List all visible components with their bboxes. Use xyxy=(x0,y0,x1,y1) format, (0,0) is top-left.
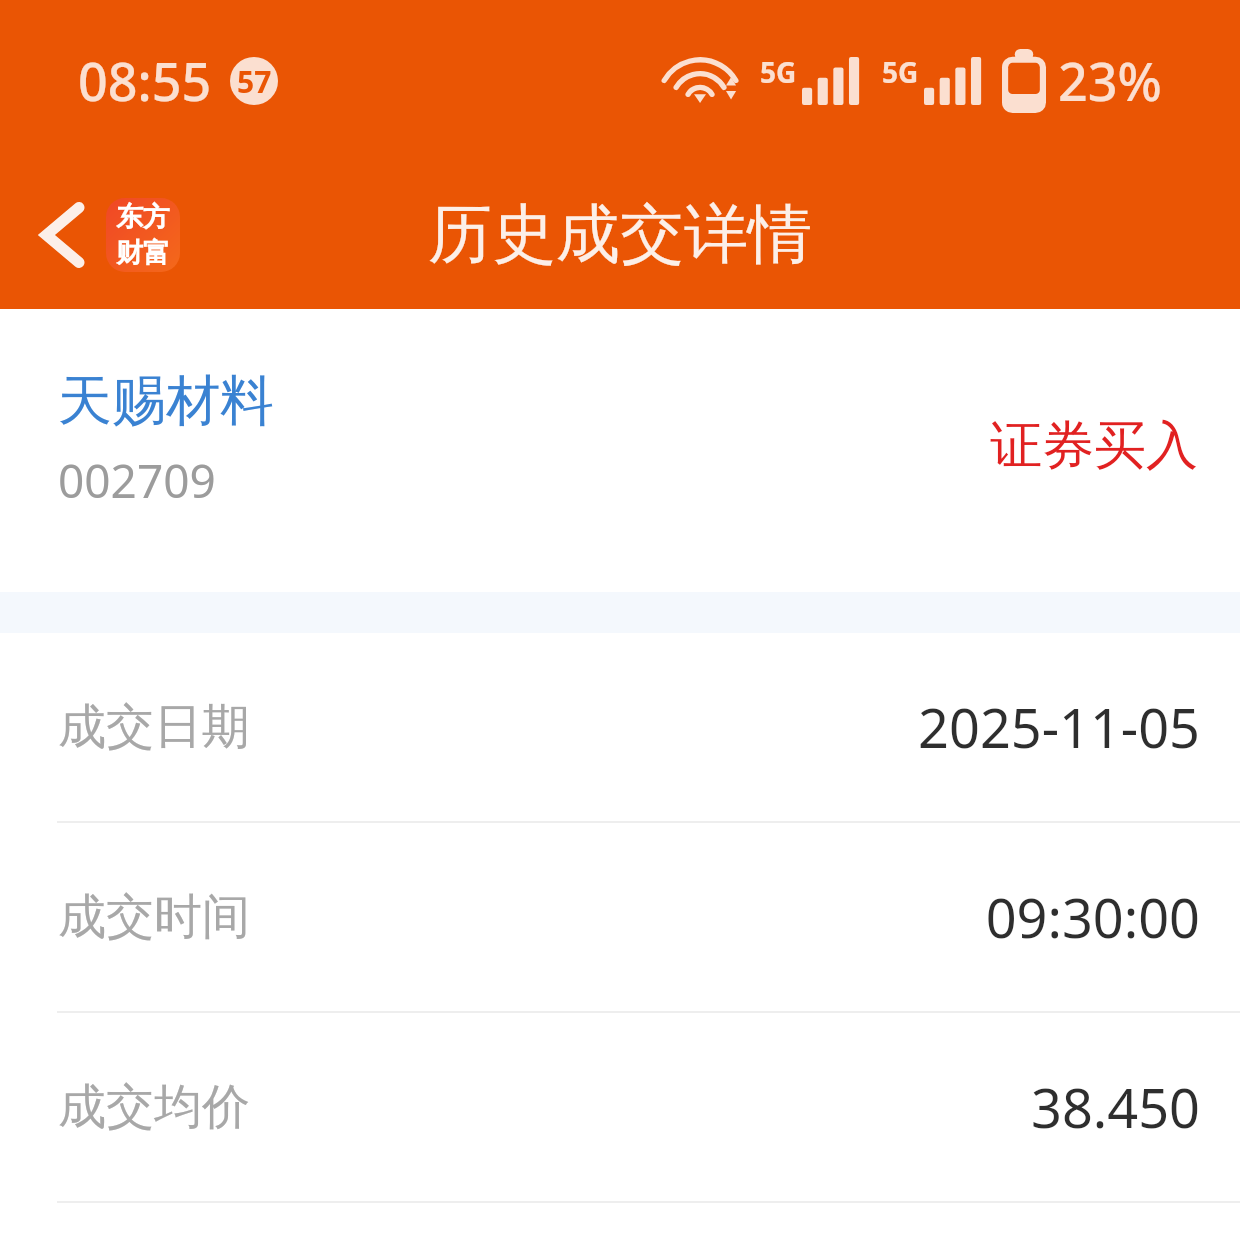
staticText: 002709 xyxy=(58,449,216,512)
button[interactable]: 成交日期 xyxy=(0,633,1240,821)
button[interactable]: 成交均价 xyxy=(0,1013,1240,1201)
staticText: 成交日期 xyxy=(58,697,250,757)
staticText: 历史成交详情 xyxy=(428,194,812,275)
staticText: 23% xyxy=(1058,45,1162,116)
staticText: 天赐材料 xyxy=(58,367,274,435)
staticText: 2025-11-05 xyxy=(918,690,1200,764)
staticText: 57 xyxy=(237,61,272,102)
staticText: 证券买入 xyxy=(990,413,1198,479)
staticText: 09:30:00 xyxy=(985,880,1200,954)
button[interactable]: 成交时间 xyxy=(0,823,1240,1011)
staticText: 成交时间 xyxy=(58,887,250,947)
staticText: 08:55 xyxy=(78,45,212,116)
button[interactable]: East Money xyxy=(106,198,180,272)
staticText: 38.450 xyxy=(1031,1070,1200,1144)
staticText: 5G xyxy=(882,53,919,91)
button[interactable]: Back xyxy=(12,185,112,285)
staticText: 财富 xyxy=(116,236,170,270)
staticText: 5G xyxy=(760,53,797,91)
staticText: 成交均价 xyxy=(58,1077,250,1137)
staticText: 东方 xyxy=(116,200,170,234)
